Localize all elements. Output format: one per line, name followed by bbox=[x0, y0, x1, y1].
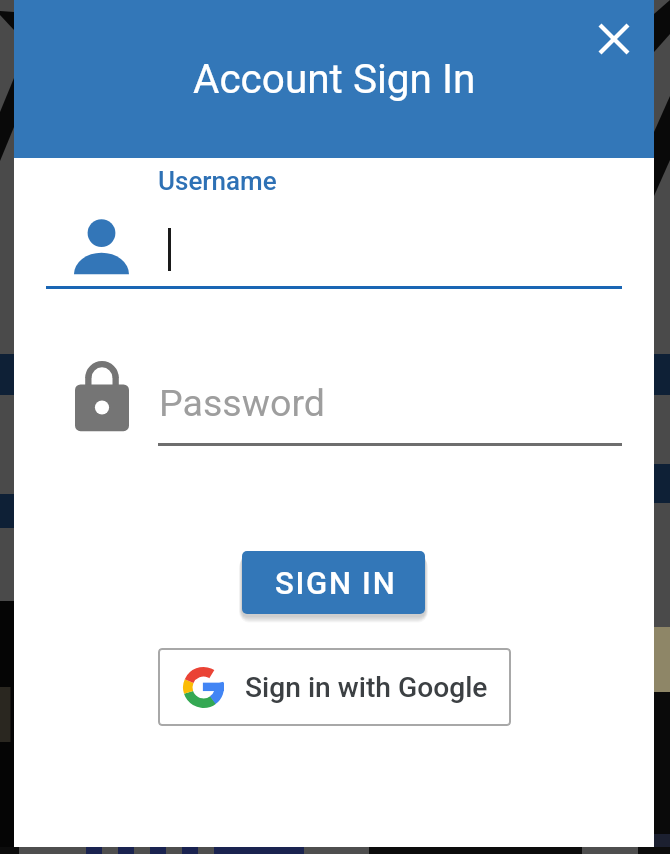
button[interactable]: Sign in with Google bbox=[158, 648, 511, 726]
staticText: Username bbox=[158, 166, 277, 196]
staticText: Account Sign In bbox=[193, 55, 476, 102]
staticText: SIGN IN bbox=[275, 565, 397, 601]
button[interactable]: Close bbox=[589, 14, 639, 64]
staticText: Sign in with Google bbox=[245, 671, 488, 704]
button[interactable]: Username field bbox=[46, 210, 622, 290]
staticText: Password bbox=[159, 381, 326, 425]
button[interactable]: SIGN IN bbox=[242, 551, 425, 614]
button[interactable]: Password field bbox=[46, 360, 622, 447]
